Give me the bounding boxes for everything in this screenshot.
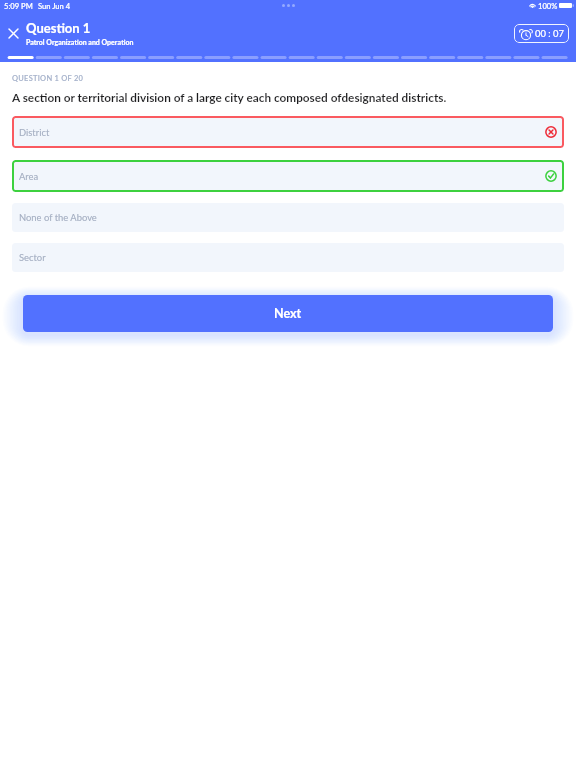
button[interactable]: District <box>12 116 564 148</box>
staticText: Patrol Organization and Operation <box>26 38 134 46</box>
staticText: District <box>19 127 50 138</box>
staticText: Question 1 <box>26 20 91 36</box>
staticText: Sector <box>19 252 46 263</box>
staticText: Next <box>274 306 302 321</box>
staticText: Area <box>19 171 39 182</box>
button[interactable]: None of the Above <box>12 203 564 232</box>
staticText: 00 : 07 <box>535 28 564 39</box>
staticText: 5:09 PM <box>4 1 33 10</box>
button[interactable]: Area <box>12 160 564 192</box>
staticText: 100% <box>538 1 558 10</box>
staticText: A section or territorial division of a l… <box>12 90 447 104</box>
staticText: QUESTION 1 OF 20 <box>12 74 84 83</box>
staticText: None of the Above <box>19 212 97 223</box>
button[interactable]: 00 : 07 <box>514 24 569 43</box>
button[interactable]: Next <box>23 295 553 332</box>
button[interactable]: Sector <box>12 243 564 272</box>
staticText: Sun Jun 4 <box>38 1 71 10</box>
button[interactable]: Close <box>3 23 23 43</box>
